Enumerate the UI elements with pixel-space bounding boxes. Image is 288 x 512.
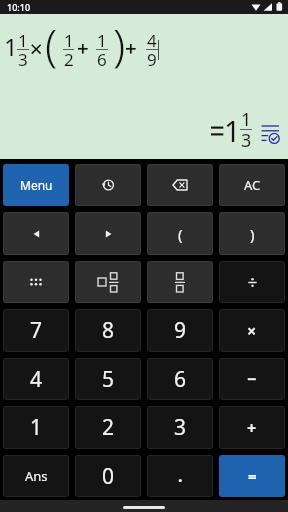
- staticText: 2: [64, 48, 74, 71]
- staticText: (: [45, 15, 58, 75]
- button[interactable]: Ans: [3, 455, 69, 497]
- staticText: Menu: [20, 177, 53, 193]
- staticText: 0: [102, 462, 115, 491]
- button[interactable]: ×: [219, 309, 285, 352]
- button[interactable]: 7: [3, 309, 69, 352]
- staticText: 1: [4, 30, 18, 63]
- button[interactable]: 2: [75, 406, 141, 449]
- button[interactable]: 1: [3, 406, 69, 449]
- staticText: 9: [174, 316, 187, 345]
- button[interactable]: [75, 212, 141, 255]
- staticText: 4: [30, 365, 43, 394]
- staticText: 1: [97, 29, 107, 52]
- staticText: 3: [174, 413, 187, 442]
- button[interactable]: (: [147, 212, 213, 255]
- staticText: 8: [102, 316, 115, 345]
- staticText: 1: [241, 107, 252, 132]
- button[interactable]: [261, 125, 281, 143]
- button[interactable]: [3, 212, 69, 255]
- staticText: 6: [97, 48, 107, 71]
- staticText: 1: [30, 413, 43, 442]
- staticText: 5: [102, 365, 115, 394]
- staticText: 1: [224, 111, 241, 150]
- staticText: 9: [147, 48, 157, 71]
- button[interactable]: +: [219, 406, 285, 449]
- button[interactable]: 0: [75, 455, 141, 497]
- button[interactable]: 8: [75, 309, 141, 352]
- button[interactable]: 5: [75, 358, 141, 400]
- button[interactable]: [219, 261, 285, 303]
- staticText: −: [247, 368, 257, 390]
- staticText: =: [248, 466, 257, 486]
- button[interactable]: Menu: [3, 164, 69, 206]
- staticText: 2: [102, 413, 115, 442]
- staticText: (: [178, 224, 183, 244]
- button[interactable]: AC: [219, 164, 285, 206]
- button[interactable]: [147, 261, 213, 303]
- button[interactable]: 6: [147, 358, 213, 400]
- staticText: ): [250, 224, 255, 244]
- button[interactable]: 9: [147, 309, 213, 352]
- button[interactable]: [75, 261, 141, 303]
- button[interactable]: =: [219, 455, 285, 497]
- button[interactable]: .: [147, 455, 213, 497]
- staticText: 1: [64, 29, 74, 52]
- button[interactable]: ): [219, 212, 285, 255]
- staticText: ): [113, 15, 126, 75]
- button[interactable]: 3: [147, 406, 213, 449]
- staticText: ×: [247, 320, 257, 342]
- staticText: .: [178, 465, 183, 487]
- button[interactable]: −: [219, 358, 285, 400]
- staticText: 3: [18, 48, 28, 71]
- staticText: AC: [244, 176, 261, 194]
- staticText: 1: [18, 29, 28, 52]
- staticText: 10:10: [7, 1, 31, 13]
- staticText: 7: [30, 316, 43, 345]
- staticText: +: [247, 417, 257, 439]
- staticText: 6: [174, 365, 187, 394]
- staticText: Ans: [25, 467, 48, 485]
- staticText: 4: [147, 29, 157, 52]
- button[interactable]: [147, 164, 213, 206]
- button[interactable]: 4: [3, 358, 69, 400]
- staticText: 3: [241, 128, 252, 153]
- button[interactable]: [3, 261, 69, 303]
- button[interactable]: [75, 164, 141, 206]
